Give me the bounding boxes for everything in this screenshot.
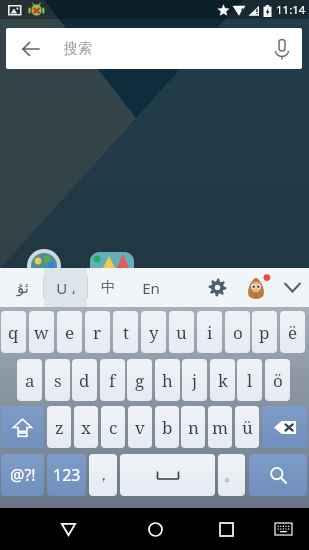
- staticText: ë: [288, 321, 298, 344]
- button[interactable]: u: [169, 311, 194, 353]
- staticText: z: [55, 416, 64, 439]
- button[interactable]: l: [237, 359, 262, 401]
- staticText: b: [162, 416, 173, 439]
- staticText: o: [233, 321, 243, 344]
- button[interactable]: g: [127, 359, 152, 401]
- button[interactable]: Back: [6, 28, 302, 69]
- button[interactable]: y: [141, 311, 166, 353]
- other: Search: [269, 466, 288, 485]
- button[interactable]: ，: [89, 454, 117, 496]
- staticText: 。: [224, 466, 239, 485]
- button[interactable]: Home: [134, 508, 176, 550]
- button[interactable]: p: [252, 311, 277, 353]
- button[interactable]: b: [155, 406, 179, 448]
- button[interactable]: ö: [265, 359, 290, 401]
- staticText: a: [25, 369, 35, 392]
- staticText: d: [79, 369, 90, 392]
- button[interactable]: 。: [218, 454, 245, 496]
- button[interactable]: o: [225, 311, 250, 353]
- button[interactable]: e: [57, 311, 82, 353]
- button[interactable]: m: [208, 406, 232, 448]
- staticText: j: [192, 369, 198, 392]
- staticText: q: [8, 321, 19, 344]
- staticText: @?!: [10, 464, 36, 486]
- button[interactable]: Recent apps: [205, 508, 247, 550]
- staticText: e: [65, 321, 75, 344]
- staticText: ö: [273, 369, 283, 392]
- staticText: g: [135, 369, 145, 392]
- button[interactable]: c: [101, 406, 125, 448]
- staticText: f: [109, 369, 116, 392]
- button[interactable]: w: [29, 311, 54, 353]
- staticText: 123: [53, 464, 81, 486]
- staticText: ，: [96, 466, 111, 485]
- button[interactable]: Shift: [1, 406, 44, 448]
- staticText: 中: [101, 278, 116, 297]
- button[interactable]: x: [74, 406, 98, 448]
- staticText: En: [142, 278, 160, 298]
- button[interactable]: ë: [280, 311, 305, 353]
- staticText: v: [135, 416, 145, 439]
- button[interactable]: h: [155, 359, 180, 401]
- button[interactable]: i: [197, 311, 222, 353]
- staticText: n: [188, 416, 199, 439]
- staticText: k: [218, 369, 228, 392]
- button[interactable]: Back: [47, 508, 89, 550]
- staticText: l: [247, 369, 253, 392]
- staticText: 11:14: [276, 2, 306, 18]
- button[interactable]: f: [100, 359, 125, 401]
- staticText: U ،: [56, 278, 76, 298]
- staticText: s: [54, 369, 62, 392]
- button[interactable]: q: [1, 311, 26, 353]
- staticText: y: [149, 321, 159, 344]
- staticText: t: [123, 321, 129, 344]
- staticText: r: [93, 321, 102, 344]
- staticText: u: [176, 321, 187, 344]
- staticText: m: [212, 416, 229, 439]
- staticText: i: [207, 321, 213, 344]
- staticText: w: [34, 321, 49, 344]
- other: Space: [156, 471, 180, 480]
- button[interactable]: 中: [88, 268, 129, 307]
- other: Shift: [12, 417, 33, 438]
- staticText: x: [81, 416, 91, 439]
- button[interactable]: @?!: [1, 454, 44, 496]
- button[interactable]: k: [210, 359, 235, 401]
- other: Backspace: [273, 419, 297, 436]
- staticText: p: [259, 321, 270, 344]
- button[interactable]: Switch keyboard: [266, 512, 300, 546]
- button[interactable]: Space: [120, 454, 215, 496]
- button[interactable]: 123: [47, 454, 86, 496]
- button[interactable]: j: [182, 359, 207, 401]
- button[interactable]: v: [128, 406, 152, 448]
- button[interactable]: Search: [249, 454, 307, 496]
- button[interactable]: t: [113, 311, 138, 353]
- button[interactable]: Assistant: [238, 268, 274, 307]
- button[interactable]: a: [17, 359, 42, 401]
- button[interactable]: n: [181, 406, 205, 448]
- button[interactable]: s: [45, 359, 70, 401]
- button[interactable]: z: [47, 406, 71, 448]
- button[interactable]: En: [129, 268, 173, 307]
- button[interactable]: Backspace: [262, 406, 307, 448]
- button[interactable]: Voice search: [261, 28, 302, 69]
- button[interactable]: Settings: [200, 268, 234, 307]
- button[interactable]: d: [72, 359, 97, 401]
- button[interactable]: U ،: [44, 268, 87, 307]
- button[interactable]: r: [85, 311, 110, 353]
- button[interactable]: Hide keyboard: [276, 268, 309, 307]
- staticText: ü: [242, 416, 253, 439]
- button[interactable]: ئۇ: [2, 268, 43, 307]
- button[interactable]: ü: [235, 406, 259, 448]
- staticText: c: [109, 416, 118, 439]
- staticText: h: [162, 369, 173, 392]
- staticText: ئۇ: [17, 279, 29, 296]
- staticText: 搜索: [64, 40, 92, 58]
- button[interactable]: Back: [10, 28, 51, 69]
